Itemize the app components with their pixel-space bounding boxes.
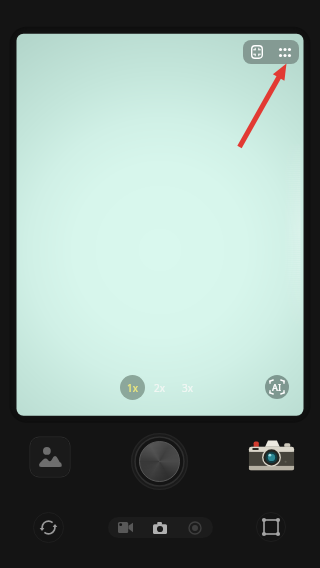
button[interactable]: 2x [149, 379, 171, 396]
staticText: 2x [154, 381, 166, 395]
button[interactable]: 1x [120, 375, 145, 400]
button[interactable]: Take photo [131, 433, 188, 490]
button[interactable]: Photo mode [143, 517, 176, 538]
button[interactable]: Framing guide [243, 40, 271, 64]
button[interactable]: Gallery [30, 437, 70, 477]
button[interactable]: Aspect ratio [256, 512, 286, 542]
button[interactable]: Camera [248, 437, 295, 471]
button[interactable]: 3x [177, 379, 199, 396]
button[interactable]: Portrait mode [176, 517, 213, 538]
staticText: 3x [182, 381, 194, 395]
staticText: 1x [127, 381, 139, 395]
button[interactable]: More options [271, 40, 299, 64]
button[interactable]: Switch camera [33, 512, 64, 543]
button[interactable]: Video mode [108, 517, 143, 538]
button[interactable]: AI enhance [265, 375, 289, 399]
staticText: AI [272, 381, 282, 393]
